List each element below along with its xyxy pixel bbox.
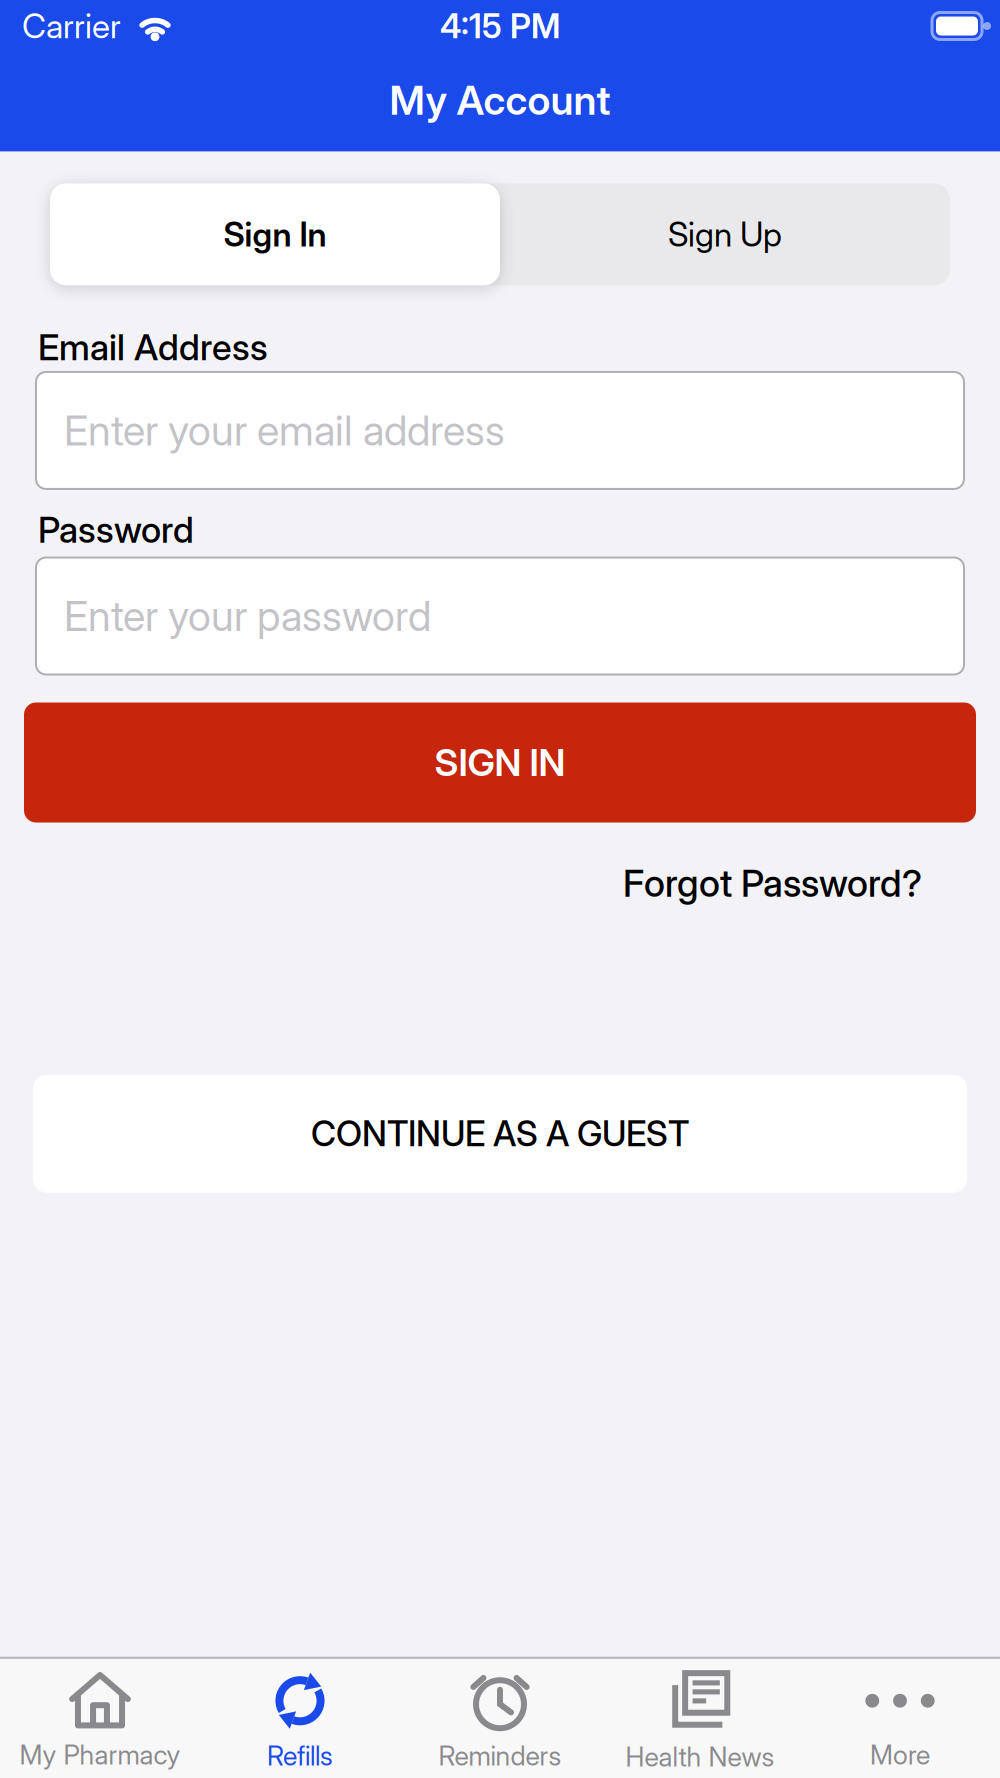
staticText: Password: [38, 508, 194, 552]
button[interactable]: CONTINUE AS A GUEST: [33, 1075, 967, 1193]
staticText: More: [870, 1739, 930, 1771]
button[interactable]: More: [800, 1673, 1000, 1771]
staticText: Sign Up: [668, 214, 782, 254]
button[interactable]: Reminders: [400, 1672, 600, 1772]
staticText: Refills: [267, 1740, 333, 1772]
staticText: Reminders: [438, 1740, 561, 1772]
staticText: Enter your email address: [64, 405, 505, 455]
staticText: My Pharmacy: [19, 1739, 180, 1771]
button[interactable]: Forgot Password?: [623, 860, 922, 906]
button[interactable]: Health News: [600, 1671, 800, 1773]
staticText: CONTINUE AS A GUEST: [311, 1113, 689, 1155]
staticText: SIGN IN: [434, 740, 565, 785]
staticText: Carrier: [22, 6, 121, 46]
button[interactable]: SIGN IN: [24, 702, 976, 822]
staticText: Sign In: [223, 214, 326, 254]
button[interactable]: Sign In: [50, 183, 500, 285]
staticText: Forgot Password?: [623, 860, 922, 906]
button[interactable]: Sign Up: [500, 214, 950, 254]
button[interactable]: My Pharmacy: [0, 1673, 200, 1771]
staticText: Enter your password: [64, 591, 431, 641]
button[interactable]: Refills: [200, 1672, 400, 1772]
staticText: 4:15 PM: [440, 6, 560, 46]
staticText: Health News: [625, 1741, 774, 1773]
staticText: Email Address: [38, 325, 268, 369]
staticText: My Account: [389, 76, 610, 124]
